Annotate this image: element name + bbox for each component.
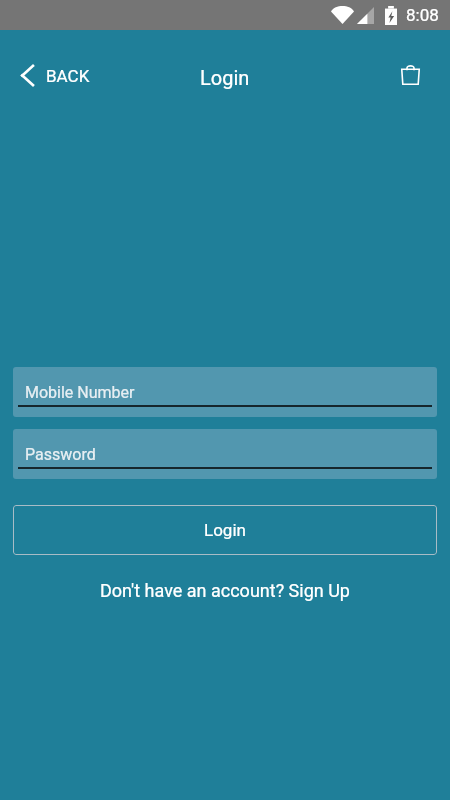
- staticText: 8:08: [406, 5, 439, 25]
- button[interactable]: Don't have an account? Sign Up: [0, 580, 450, 601]
- button[interactable]: Mobile Number: [13, 367, 437, 417]
- staticText: BACK: [46, 66, 90, 86]
- button[interactable]: BACK: [20, 65, 90, 86]
- staticText: Login: [204, 520, 246, 540]
- button[interactable]: Password: [13, 429, 437, 479]
- staticText: Login: [200, 66, 250, 89]
- staticText: Password: [25, 445, 96, 464]
- staticText: Mobile Number: [25, 383, 135, 402]
- button[interactable]: Shopping bag: [395, 60, 425, 90]
- button[interactable]: Login: [13, 505, 437, 555]
- staticText: Don't have an account? Sign Up: [100, 580, 350, 601]
